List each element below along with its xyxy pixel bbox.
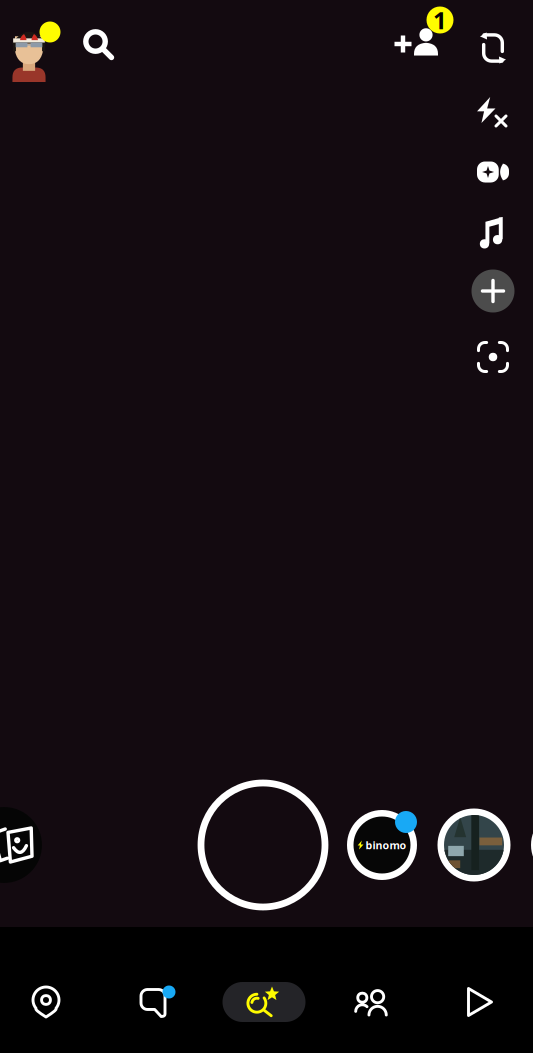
button[interactable]: Scan [471, 335, 515, 379]
button[interactable]: Capture [195, 777, 331, 913]
button[interactable]: Search [72, 18, 126, 72]
button[interactable]: Lens [437, 808, 510, 881]
button[interactable]: Video effects [471, 150, 515, 194]
button[interactable]: Chat [105, 957, 205, 1047]
button[interactable]: Map [0, 957, 96, 1047]
button[interactable]: Music [471, 210, 515, 254]
button[interactable]: Camera [214, 957, 314, 1047]
button[interactable]: Memories [0, 807, 42, 883]
button[interactable]: Profile [0, 12, 72, 84]
button[interactable]: Stories [322, 957, 422, 1047]
button[interactable]: Add [471, 269, 515, 313]
button[interactable]: Flip camera [471, 26, 515, 70]
staticText: 1 [433, 4, 447, 36]
button[interactable]: Flash off [471, 91, 515, 135]
button[interactable]: Add friends [391, 8, 457, 64]
button[interactable]: Lens [531, 810, 533, 880]
button[interactable]: Spotlight [430, 957, 530, 1047]
staticText: binomo [365, 838, 406, 852]
button[interactable]: Binomo lens [344, 807, 420, 883]
